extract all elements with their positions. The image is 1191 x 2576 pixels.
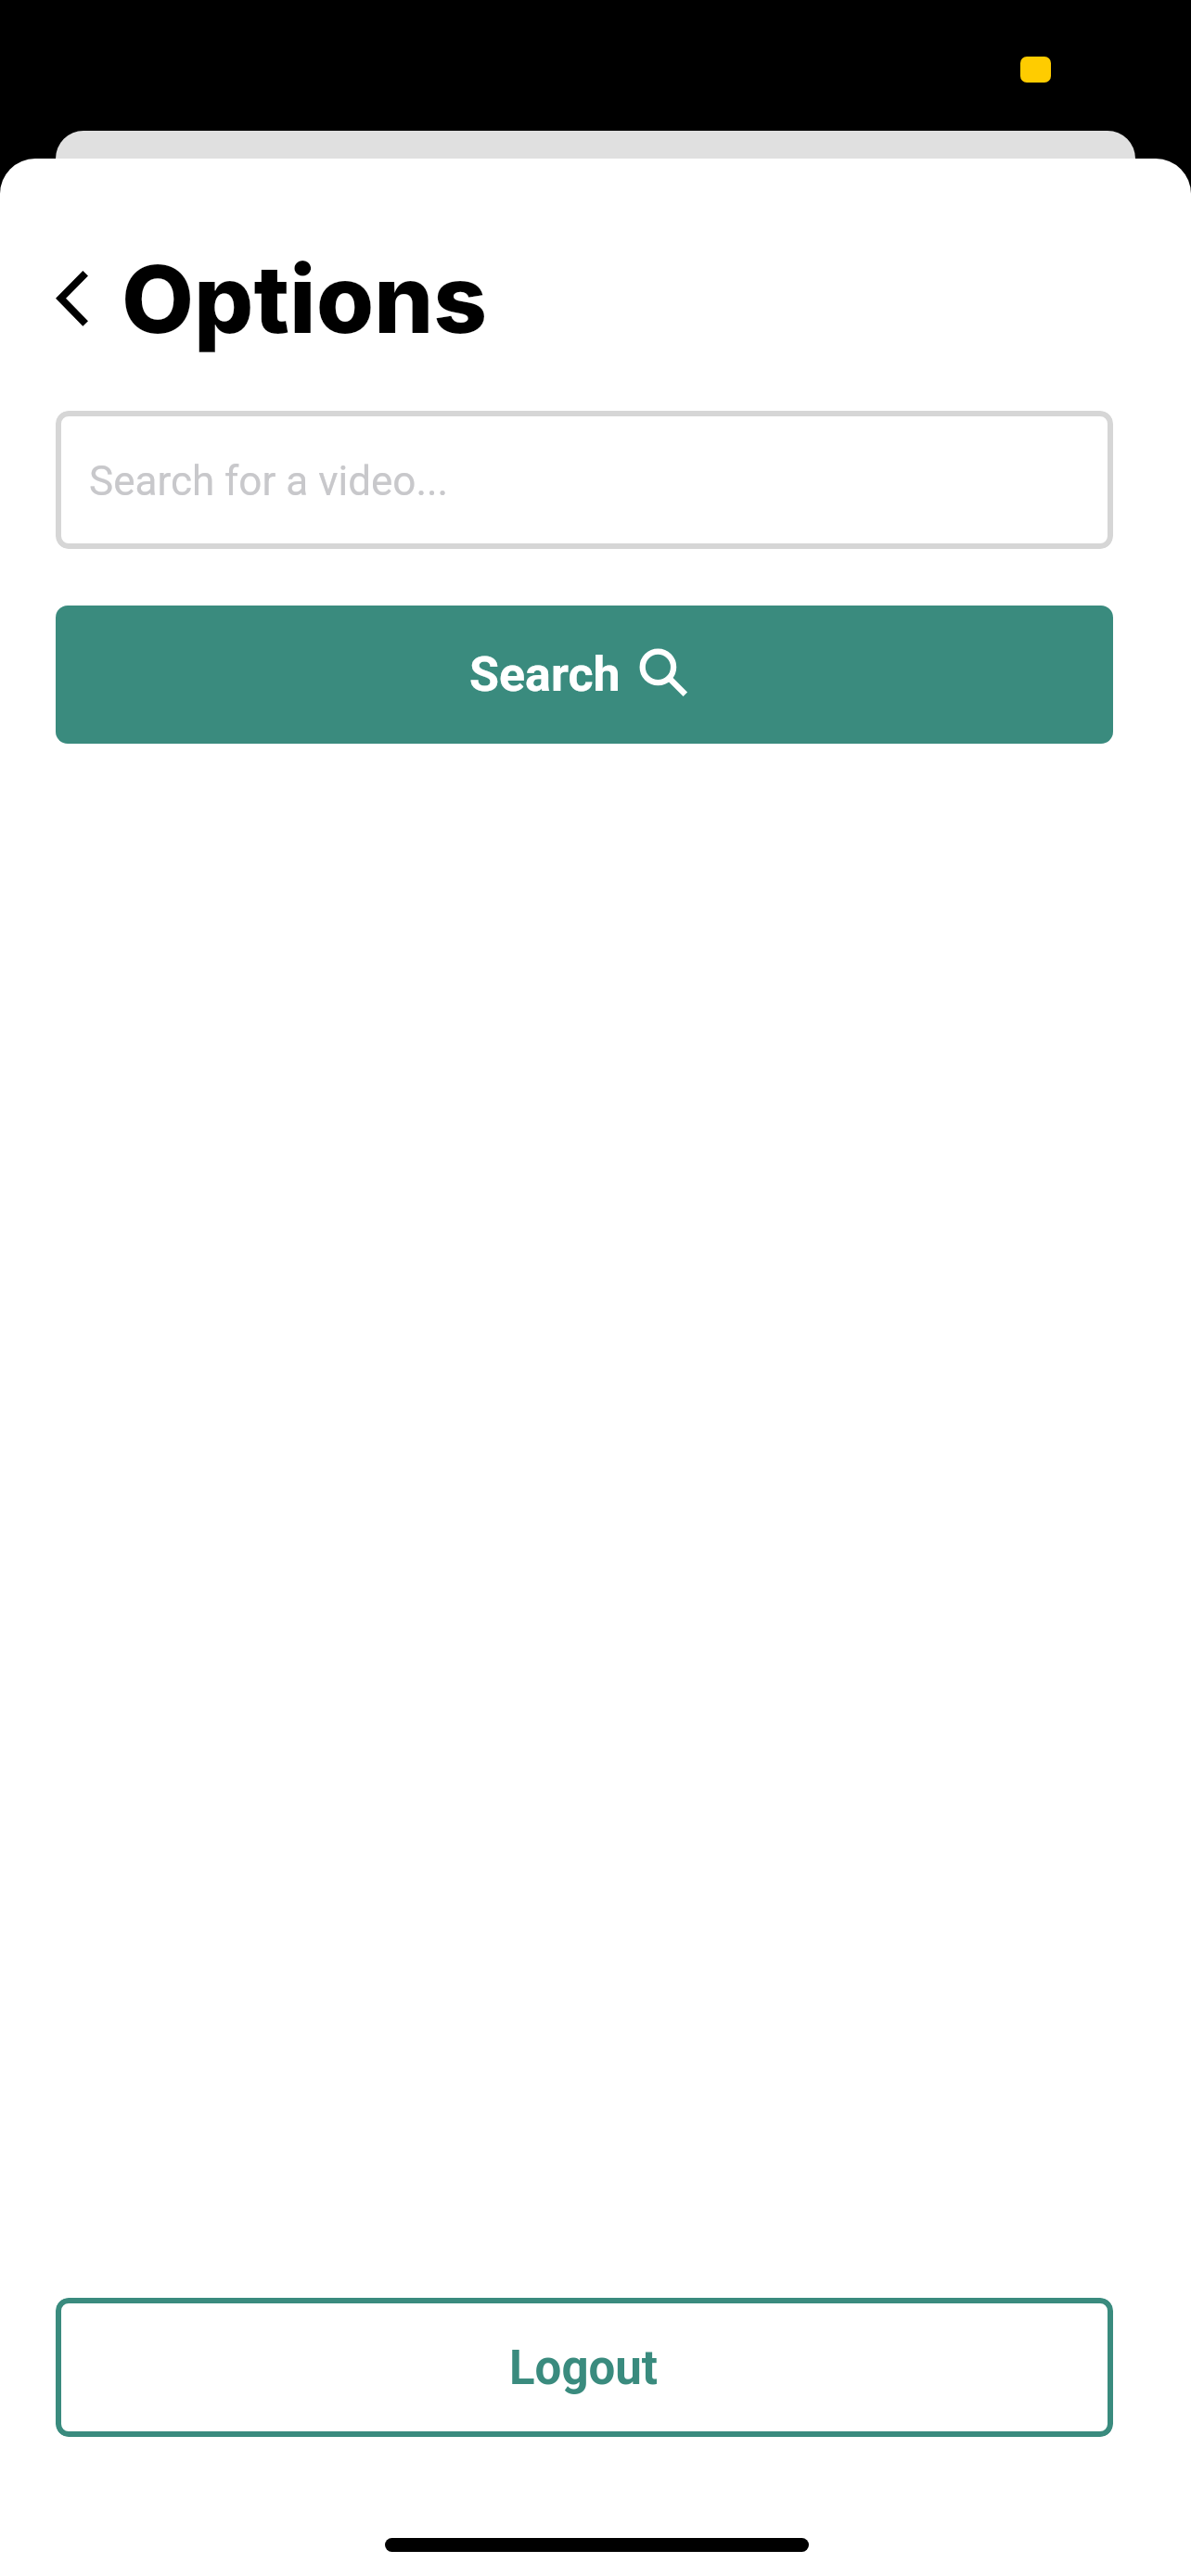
staticText: Options: [122, 242, 488, 355]
button[interactable]: Search: [56, 606, 1113, 744]
button[interactable]: Logout: [56, 2298, 1113, 2437]
button[interactable]: Back: [19, 233, 126, 344]
button[interactable]: Options: [122, 242, 488, 355]
staticText: Logout: [509, 2340, 659, 2396]
staticText: Search: [469, 646, 621, 703]
staticText: Search for a video...: [89, 457, 449, 505]
button[interactable]: Search for a video...: [56, 411, 1113, 549]
